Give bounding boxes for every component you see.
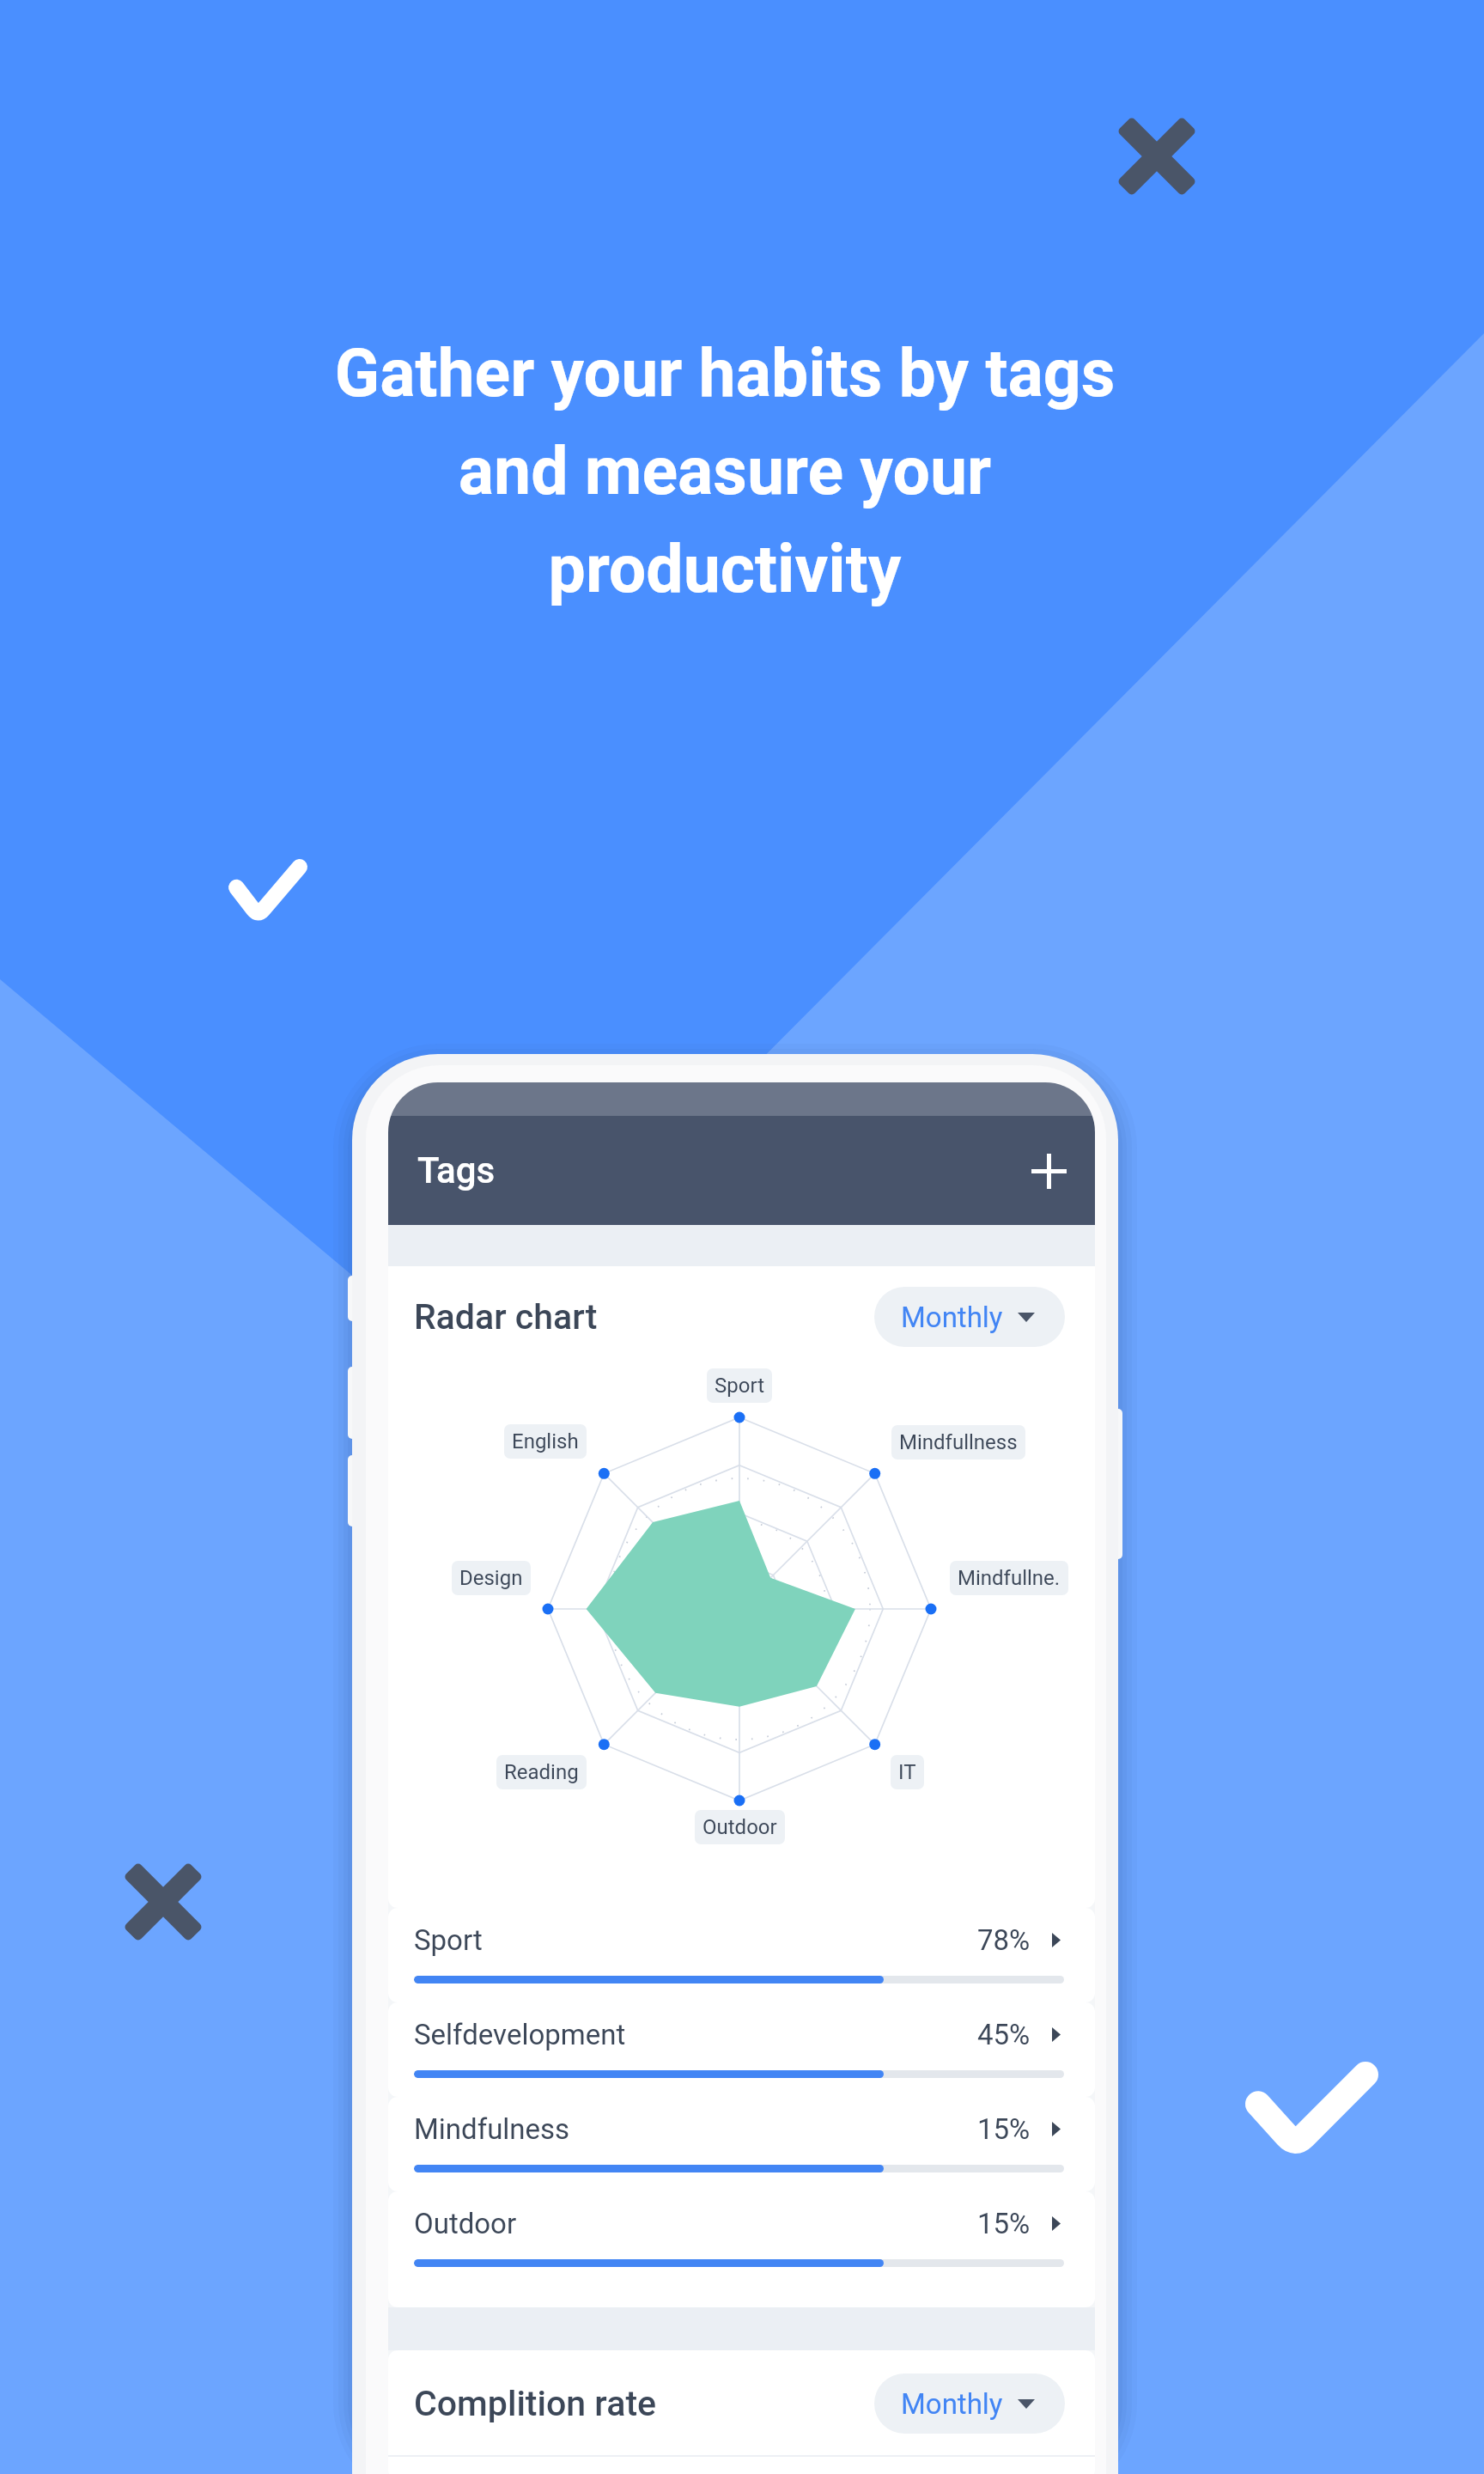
staticText: Radar chart: [414, 1296, 598, 1338]
button[interactable]: Monthly: [874, 2373, 1065, 2434]
staticText: Selfdevelopment: [414, 2018, 626, 2051]
staticText: 45%: [977, 2018, 1031, 2051]
staticText: Sport: [414, 1923, 483, 1957]
staticText: Mindfullness: [899, 1430, 1018, 1454]
staticText: IT: [898, 1760, 916, 1784]
staticText: 15%: [977, 2112, 1031, 2146]
staticText: Mindfulness: [414, 2112, 570, 2146]
staticText: Complition rate: [414, 2383, 657, 2424]
button[interactable]: Outdoor: [388, 2191, 1095, 2307]
staticText: Tags: [417, 1149, 496, 1191]
staticText: Outdoor: [414, 2207, 517, 2240]
button[interactable]: Mindfulness: [388, 2097, 1095, 2191]
staticText: Outdoor: [702, 1815, 777, 1839]
button[interactable]: Sport: [388, 1908, 1095, 2002]
staticText: 15%: [977, 2207, 1031, 2240]
staticText: Monthly: [901, 1301, 1003, 1334]
staticText: Reading: [504, 1760, 579, 1784]
staticText: Design: [459, 1566, 523, 1590]
button[interactable]: Selfdevelopment: [388, 2002, 1095, 2097]
staticText: Monthly: [901, 2387, 1003, 2421]
staticText: 78%: [977, 1923, 1031, 1957]
staticText: English: [512, 1429, 579, 1453]
staticText: Mindfullne.: [958, 1566, 1061, 1590]
button[interactable]: Monthly: [874, 1287, 1065, 1347]
staticText: Sport: [715, 1374, 764, 1398]
staticText: Gather your habits by tags and measure y…: [0, 335, 1467, 608]
button[interactable]: Add tag: [1020, 1143, 1077, 1199]
